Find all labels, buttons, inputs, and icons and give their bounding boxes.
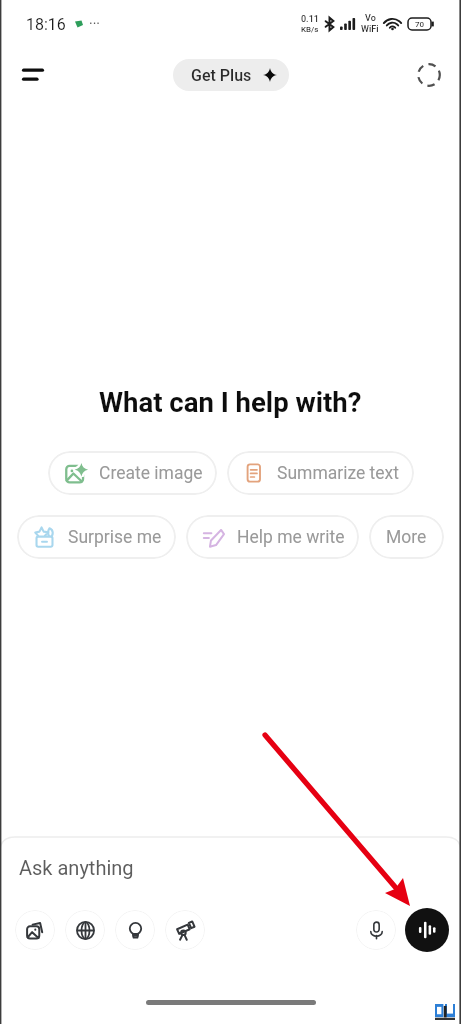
button[interactable]: Dictate (356, 910, 396, 950)
button[interactable]: Summarize text (227, 451, 414, 495)
button[interactable]: Help me write (186, 515, 359, 559)
staticText: Create image (99, 463, 203, 484)
staticText: What can I help with? (99, 386, 362, 418)
staticText: Ask anything (19, 856, 134, 879)
button[interactable]: Explore (165, 910, 205, 950)
staticText: Vo (365, 13, 376, 24)
button[interactable]: Voice mode (405, 908, 449, 952)
button[interactable]: Surprise me (17, 515, 176, 559)
button[interactable]: Think (115, 910, 155, 950)
button[interactable]: Temporary chat (407, 53, 451, 97)
button[interactable]: Menu (11, 53, 55, 97)
staticText: ··· (89, 16, 100, 32)
staticText: Get Plus (191, 66, 252, 85)
button[interactable]: Get Plus (173, 59, 289, 91)
staticText: 18:16 (26, 15, 66, 34)
button[interactable]: Web search (65, 910, 105, 950)
staticText: Surprise me (68, 527, 162, 548)
staticText: KB/s (301, 25, 319, 34)
staticText: WiFi (361, 24, 379, 35)
staticText: More (386, 527, 427, 548)
button[interactable]: Create image (48, 451, 217, 495)
staticText: Summarize text (277, 463, 400, 484)
staticText: 70 (415, 20, 425, 29)
staticText: 0.11 (301, 14, 319, 25)
button[interactable]: Photos (15, 910, 55, 950)
staticText: Help me write (237, 527, 345, 548)
button[interactable]: More (369, 515, 444, 559)
